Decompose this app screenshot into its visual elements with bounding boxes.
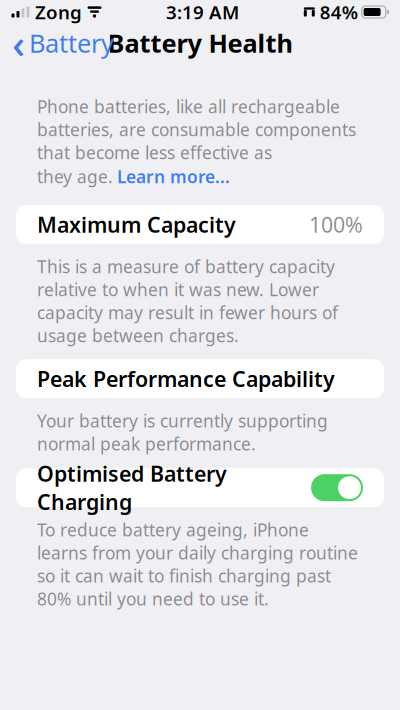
- staticText: 84%: [320, 0, 358, 24]
- staticText: This is a measure of battery capacity re…: [37, 255, 338, 347]
- staticText: Phone batteries, like all rechargeable b…: [37, 95, 356, 164]
- staticText: they age.: [37, 165, 113, 188]
- staticText: Peak Performance Capability: [37, 364, 335, 393]
- staticText: Your battery is currently supporting nor…: [37, 409, 328, 455]
- staticText: Battery: [29, 26, 114, 60]
- staticText: ‹: [12, 16, 25, 69]
- staticText: Learn more...: [117, 165, 230, 188]
- staticText: Maximum Capacity: [37, 210, 236, 239]
- button[interactable]: ‹: [0, 12, 126, 73]
- staticText: 3:19 AM: [166, 0, 239, 24]
- staticText: To reduce battery ageing, iPhone learns …: [37, 518, 358, 610]
- staticText: Optimised Battery Charging: [37, 459, 227, 516]
- staticText: Battery Health: [107, 26, 292, 60]
- staticText: Zong: [35, 0, 82, 24]
- staticText: 100%: [309, 210, 363, 239]
- button[interactable]: Learn more...: [117, 165, 230, 188]
- button[interactable]: Maximum Capacity: [0, 205, 400, 244]
- button[interactable]: Peak Performance Capability: [0, 359, 400, 398]
- button[interactable]: Optimised Battery Charging: [0, 468, 400, 507]
